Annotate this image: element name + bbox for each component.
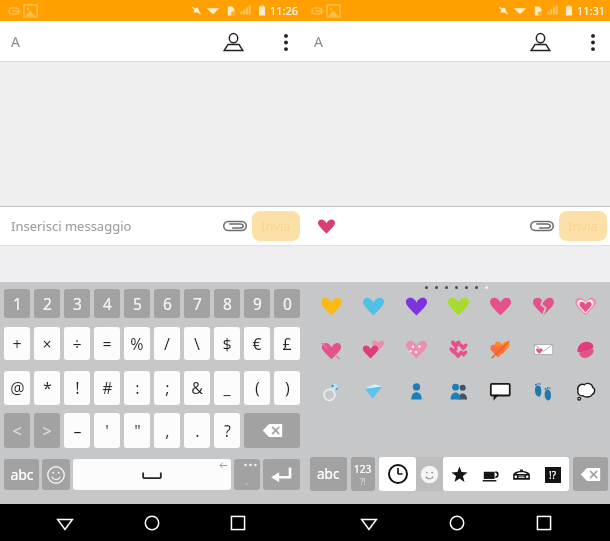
button[interactable]: ' xyxy=(94,413,120,448)
staticText: 2 xyxy=(43,293,52,314)
button[interactable]: > xyxy=(34,413,60,448)
button[interactable]: ( xyxy=(244,371,270,405)
button[interactable]: Emoji xyxy=(530,295,556,318)
button[interactable]: . xyxy=(184,413,210,448)
staticText: 9 xyxy=(253,293,262,314)
button[interactable]: Emoji xyxy=(445,380,471,403)
button[interactable]: * xyxy=(34,371,60,405)
button[interactable]: + xyxy=(4,327,30,360)
button[interactable]: Emoji xyxy=(445,295,471,318)
button[interactable]: = xyxy=(94,327,120,360)
button[interactable]: Recents xyxy=(523,504,565,541)
staticText: ? xyxy=(224,420,231,442)
staticText: > xyxy=(42,420,52,442)
button[interactable]: abc xyxy=(4,459,39,490)
button[interactable]: Emoji xyxy=(360,338,386,361)
button[interactable]: Emoji xyxy=(360,295,386,318)
button[interactable]: Emoji xyxy=(318,338,344,361)
button[interactable]: 6 xyxy=(154,289,180,318)
button[interactable]: 0 xyxy=(274,289,300,318)
button[interactable]: 5 xyxy=(124,289,150,318)
button[interactable]: abc xyxy=(310,457,347,491)
button[interactable]: Signs xyxy=(538,460,567,489)
button[interactable]: Invia xyxy=(559,211,607,241)
button[interactable]: ? xyxy=(214,413,240,448)
staticText: Invia xyxy=(261,217,291,235)
button[interactable]: @ xyxy=(4,371,30,405)
button[interactable]: Emoji xyxy=(360,380,386,403)
button[interactable]: < xyxy=(4,413,30,448)
button[interactable]: Emoji xyxy=(318,380,344,403)
button[interactable]: 1 xyxy=(4,289,30,318)
button[interactable]: 123 xyxy=(351,457,375,491)
button[interactable]: – xyxy=(64,413,90,448)
button[interactable]: Smileys xyxy=(416,457,443,491)
button[interactable]: Space xyxy=(73,459,231,490)
staticText: 0 xyxy=(283,293,292,314)
button[interactable]: More options xyxy=(269,24,303,60)
button[interactable]: $ xyxy=(214,327,240,360)
button[interactable]: 9 xyxy=(244,289,270,318)
button[interactable]: ) xyxy=(274,371,300,405)
button[interactable]: £ xyxy=(274,327,300,360)
button[interactable]: ! xyxy=(64,371,90,405)
button[interactable]: Emoji xyxy=(445,338,471,361)
button[interactable]: Emoji xyxy=(530,338,556,361)
button[interactable]: Symbols xyxy=(445,460,474,489)
button[interactable]: & xyxy=(184,371,210,405)
button[interactable]: Recents xyxy=(217,504,259,541)
button[interactable]: Back xyxy=(348,504,390,541)
button[interactable]: Invia xyxy=(252,211,300,241)
staticText: A xyxy=(314,32,323,51)
button[interactable]: Contact xyxy=(522,24,558,60)
staticText: £ xyxy=(282,333,292,355)
button[interactable]: Home xyxy=(131,504,173,541)
button[interactable]: \ xyxy=(184,327,210,360)
button[interactable]: ÷ xyxy=(64,327,90,360)
button[interactable]: # xyxy=(94,371,120,405)
button[interactable]: Enter xyxy=(263,459,300,490)
button[interactable]: 2 xyxy=(34,289,60,318)
button[interactable]: × xyxy=(34,327,60,360)
button[interactable]: 7 xyxy=(184,289,210,318)
button[interactable]: Emoji xyxy=(403,380,429,403)
button[interactable]: . xyxy=(234,459,260,490)
button[interactable]: Emoji xyxy=(318,295,344,318)
button[interactable]: Contact xyxy=(215,24,251,60)
button[interactable]: Backspace xyxy=(244,413,300,448)
button[interactable]: 3 xyxy=(64,289,90,318)
button[interactable]: Travel xyxy=(507,460,536,489)
button[interactable]: Food xyxy=(476,460,505,489)
button[interactable]: Emoji xyxy=(572,380,598,403)
staticText: < xyxy=(12,420,22,442)
button[interactable]: % xyxy=(124,327,150,360)
button[interactable]: Emoji xyxy=(572,338,598,361)
button[interactable]: : xyxy=(124,371,150,405)
button[interactable]: , xyxy=(154,413,180,448)
button[interactable]: _ xyxy=(214,371,240,405)
button[interactable]: Recent xyxy=(379,457,416,491)
button[interactable]: Emoji xyxy=(487,380,513,403)
staticText: / xyxy=(164,333,170,355)
button[interactable]: Back xyxy=(44,504,86,541)
button[interactable]: € xyxy=(244,327,270,360)
button[interactable]: Home xyxy=(436,504,478,541)
button[interactable]: Emoji xyxy=(403,295,429,318)
button[interactable]: ; xyxy=(154,371,180,405)
button[interactable]: Emoji xyxy=(572,295,598,318)
button[interactable]: " xyxy=(124,413,150,448)
button[interactable]: Emoji xyxy=(530,380,556,403)
button[interactable]: More options xyxy=(576,24,610,60)
button[interactable]: / xyxy=(154,327,180,360)
button[interactable]: Attach xyxy=(526,211,558,241)
staticText: \ xyxy=(194,333,200,355)
button[interactable]: Emoji xyxy=(487,295,513,318)
staticText: 1 xyxy=(13,293,22,314)
button[interactable]: Backspace xyxy=(573,457,608,491)
button[interactable]: 8 xyxy=(214,289,240,318)
button[interactable]: 4 xyxy=(94,289,120,318)
button[interactable]: Attach xyxy=(219,211,251,241)
button[interactable]: Emoji xyxy=(42,459,70,490)
button[interactable]: Emoji xyxy=(487,338,513,361)
button[interactable]: Emoji xyxy=(403,338,429,361)
